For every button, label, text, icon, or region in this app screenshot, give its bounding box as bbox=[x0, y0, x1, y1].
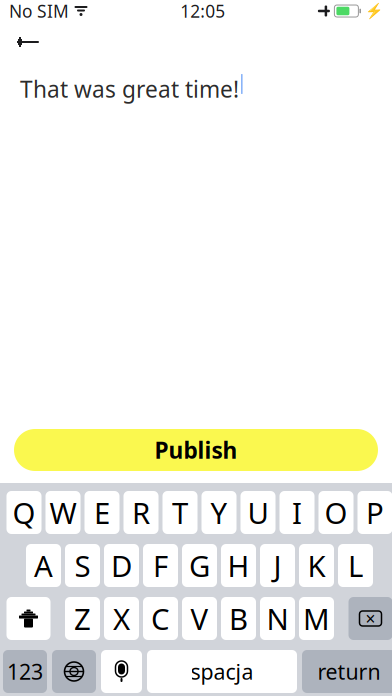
staticText: Y bbox=[210, 493, 227, 532]
button[interactable]: Shift bbox=[6, 597, 50, 640]
button[interactable]: W bbox=[45, 491, 80, 534]
button[interactable]: P bbox=[357, 491, 392, 534]
staticText: R bbox=[132, 493, 150, 532]
button[interactable]: return bbox=[302, 650, 392, 693]
staticText: No SIM bbox=[9, 0, 69, 22]
staticText: P bbox=[366, 493, 384, 532]
staticText: 12:05 bbox=[180, 0, 225, 22]
button[interactable]: H bbox=[221, 544, 256, 587]
staticText: N bbox=[266, 599, 288, 638]
staticText: U bbox=[247, 493, 268, 532]
staticText: ⚡ bbox=[365, 3, 383, 19]
button[interactable]: X bbox=[104, 597, 139, 640]
staticText: Z bbox=[74, 599, 91, 638]
button[interactable]: Delete bbox=[348, 597, 392, 640]
button[interactable]: C bbox=[143, 597, 178, 640]
staticText: T bbox=[172, 493, 188, 532]
button[interactable]: V bbox=[182, 597, 217, 640]
staticText: Q bbox=[12, 493, 35, 532]
staticText: L bbox=[348, 546, 363, 585]
staticText: spacja bbox=[190, 657, 253, 686]
button[interactable]: S bbox=[65, 544, 100, 587]
staticText: 123 bbox=[7, 657, 43, 686]
button[interactable]: Back bbox=[6, 25, 50, 59]
button[interactable]: J bbox=[260, 544, 295, 587]
button[interactable]: spacja bbox=[147, 650, 297, 693]
staticText: O bbox=[324, 493, 347, 532]
button[interactable]: M bbox=[299, 597, 334, 640]
staticText: C bbox=[151, 599, 170, 638]
staticText: G bbox=[189, 546, 210, 585]
button[interactable]: U bbox=[240, 491, 275, 534]
button[interactable]: O bbox=[318, 491, 353, 534]
staticText: V bbox=[190, 599, 208, 638]
button[interactable]: T bbox=[162, 491, 197, 534]
button[interactable]: I bbox=[279, 491, 314, 534]
staticText: return bbox=[317, 657, 380, 686]
staticText: X bbox=[113, 599, 130, 638]
button[interactable]: B bbox=[221, 597, 256, 640]
button[interactable]: Dictate bbox=[101, 650, 142, 693]
button[interactable]: G bbox=[182, 544, 217, 587]
button[interactable]: F bbox=[143, 544, 178, 587]
staticText: D bbox=[111, 546, 132, 585]
button[interactable]: K bbox=[299, 544, 334, 587]
button[interactable]: E bbox=[84, 491, 119, 534]
staticText: H bbox=[227, 546, 249, 585]
staticText: M bbox=[303, 599, 330, 638]
button[interactable]: D bbox=[104, 544, 139, 587]
staticText: K bbox=[307, 546, 325, 585]
button[interactable]: 123 bbox=[3, 650, 47, 693]
button[interactable]: R bbox=[123, 491, 158, 534]
button[interactable]: N bbox=[260, 597, 295, 640]
staticText: J bbox=[273, 546, 281, 585]
staticText: F bbox=[153, 546, 168, 585]
staticText: W bbox=[49, 493, 76, 532]
staticText: B bbox=[229, 599, 248, 638]
staticText: That was great time! bbox=[20, 74, 239, 104]
button[interactable]: Publish bbox=[14, 429, 378, 471]
staticText: E bbox=[94, 493, 110, 532]
staticText: × bbox=[365, 607, 375, 630]
button[interactable]: Next keyboard bbox=[52, 650, 96, 693]
staticText: I bbox=[292, 493, 302, 532]
staticText: A bbox=[34, 546, 53, 585]
staticText: S bbox=[74, 546, 90, 585]
button[interactable]: Q bbox=[6, 491, 41, 534]
staticText: Publish bbox=[154, 435, 237, 465]
button[interactable]: Y bbox=[201, 491, 236, 534]
button[interactable]: Z bbox=[65, 597, 100, 640]
button[interactable]: L bbox=[338, 544, 373, 587]
button[interactable]: A bbox=[26, 544, 61, 587]
